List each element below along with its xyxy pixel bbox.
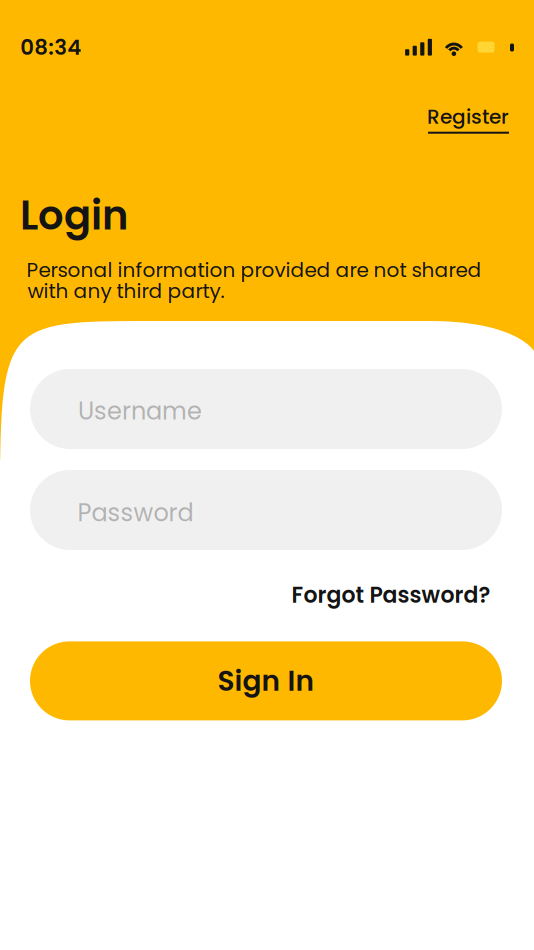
staticText: Login (20, 187, 128, 243)
staticText: 08:34 (20, 32, 81, 62)
staticText: Username (78, 394, 202, 428)
button[interactable]: Sign In (30, 641, 502, 720)
staticText: Sign In (217, 661, 314, 700)
button[interactable]: Forgot Password? (292, 580, 491, 610)
staticText: Register (427, 103, 509, 131)
staticText: Personal information provided are not sh… (27, 256, 482, 284)
staticText: Forgot Password? (292, 580, 491, 610)
staticText: Password (77, 496, 193, 530)
button[interactable]: Register (427, 103, 509, 133)
staticText: with any third party. (28, 277, 225, 305)
